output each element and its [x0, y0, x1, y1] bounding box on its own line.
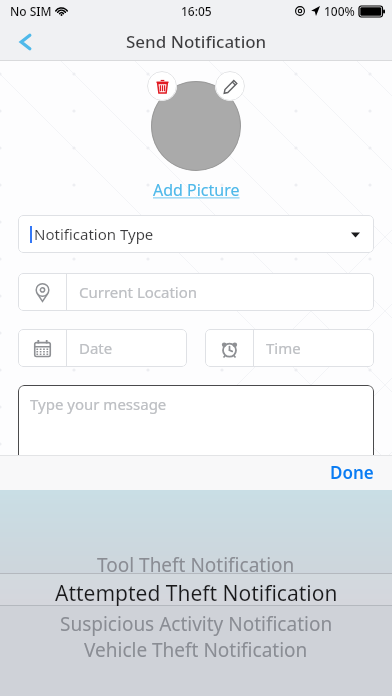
button[interactable]: Done [320, 456, 384, 489]
staticText: Type your message [30, 394, 167, 414]
staticText: No SIM [10, 3, 52, 19]
staticText: Send Notification [126, 30, 267, 53]
button[interactable]: Pick time [205, 329, 374, 367]
staticText: Add Picture [153, 179, 240, 201]
button[interactable]: Add Picture [147, 177, 246, 203]
staticText: Notification Type [34, 224, 154, 244]
button[interactable]: Pick date [18, 329, 187, 367]
staticText: Time [266, 338, 301, 358]
staticText: 16:05 [181, 3, 212, 19]
staticText: Suspicious Activity Notification [60, 611, 333, 637]
staticText: Date [79, 338, 113, 358]
button[interactable]: Vehicle Theft Notification [0, 637, 392, 663]
staticText: Current Location [79, 282, 198, 302]
button[interactable]: Attempted Theft Notification [0, 579, 392, 607]
button[interactable]: Edit picture [215, 71, 245, 101]
button[interactable]: Current location [18, 273, 374, 311]
button[interactable]: Tool Theft Notification [0, 552, 392, 578]
button[interactable]: Delete picture [147, 71, 177, 101]
button[interactable]: Suspicious Activity Notification [0, 611, 392, 637]
button[interactable]: Back [6, 22, 46, 61]
staticText: Vehicle Theft Notification [84, 637, 308, 663]
staticText: Tool Theft Notification [97, 552, 295, 578]
staticText: Done [330, 461, 374, 484]
button[interactable]: Notification Type [18, 215, 374, 253]
button[interactable]: Profile picture [151, 81, 241, 171]
staticText: Attempted Theft Notification [55, 579, 338, 607]
staticText: 100% [324, 3, 355, 19]
button[interactable]: Type your message [18, 385, 374, 465]
